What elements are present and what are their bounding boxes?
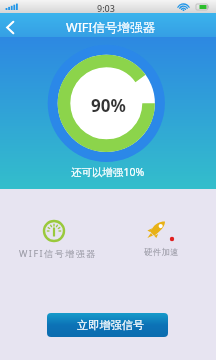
button[interactable]: Back <box>0 13 30 37</box>
button[interactable]: 硬件加速 <box>114 210 206 266</box>
staticText: WIFI信号增强器 <box>66 19 156 36</box>
staticText: 还可以增强10% <box>71 165 145 179</box>
staticText: 9:03 <box>97 2 115 14</box>
staticText: 立即增强信号 <box>77 318 145 332</box>
staticText: 90% <box>91 94 126 117</box>
button[interactable]: WIFI信号增强器 <box>8 210 100 266</box>
staticText: WIFI信号增强器 <box>19 247 97 259</box>
button[interactable]: 立即增强信号 <box>47 313 168 337</box>
staticText: 硬件加速 <box>144 247 180 258</box>
